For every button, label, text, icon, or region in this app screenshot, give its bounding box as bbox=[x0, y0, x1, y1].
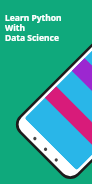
staticText: Learn Python With Data Science bbox=[5, 12, 62, 44]
